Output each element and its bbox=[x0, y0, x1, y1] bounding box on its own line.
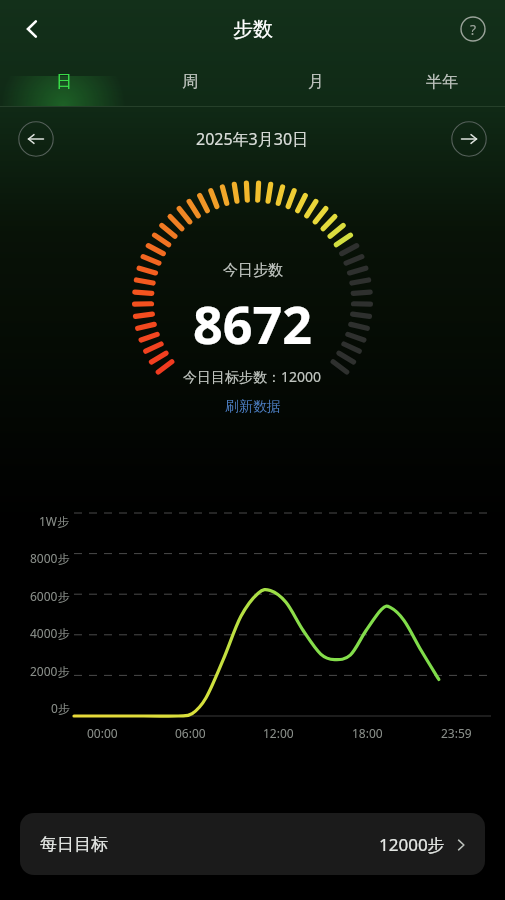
staticText: 8672 bbox=[193, 288, 312, 359]
staticText: 1W步 bbox=[39, 513, 70, 529]
staticText: 12000步 bbox=[379, 833, 445, 856]
staticText: 今日目标步数：12000 bbox=[183, 367, 322, 386]
staticText: 步数 bbox=[233, 17, 273, 42]
button[interactable]: 周 bbox=[127, 58, 253, 106]
staticText: ? bbox=[470, 20, 477, 39]
button[interactable]: 半年 bbox=[379, 58, 505, 106]
staticText: 18:00 bbox=[352, 725, 383, 741]
button[interactable]: 月 bbox=[253, 58, 379, 106]
staticText: 8000步 bbox=[30, 550, 70, 566]
staticText: 半年 bbox=[426, 72, 458, 92]
button[interactable]: Next day bbox=[451, 121, 487, 157]
staticText: 今日步数 bbox=[223, 261, 283, 280]
staticText: 0步 bbox=[51, 700, 70, 716]
staticText: 23:59 bbox=[441, 725, 472, 741]
button[interactable]: 日 bbox=[0, 58, 127, 106]
button[interactable]: Help bbox=[451, 7, 495, 51]
button[interactable]: 刷新数据 bbox=[217, 396, 289, 418]
staticText: 06:00 bbox=[175, 725, 206, 741]
staticText: 12:00 bbox=[263, 725, 294, 741]
button[interactable]: Previous day bbox=[18, 121, 54, 157]
staticText: 2025年3月30日 bbox=[196, 128, 309, 150]
staticText: 刷新数据 bbox=[225, 398, 281, 416]
staticText: 4000步 bbox=[30, 625, 70, 641]
staticText: 00:00 bbox=[87, 725, 118, 741]
staticText: 每日目标 bbox=[40, 834, 108, 855]
staticText: 月 bbox=[308, 72, 324, 92]
staticText: 2000步 bbox=[30, 663, 70, 679]
button[interactable]: Back bbox=[8, 5, 56, 53]
button[interactable]: 每日目标 bbox=[20, 813, 485, 875]
staticText: 周 bbox=[182, 72, 198, 92]
staticText: 日 bbox=[56, 72, 72, 92]
staticText: 6000步 bbox=[30, 588, 70, 604]
